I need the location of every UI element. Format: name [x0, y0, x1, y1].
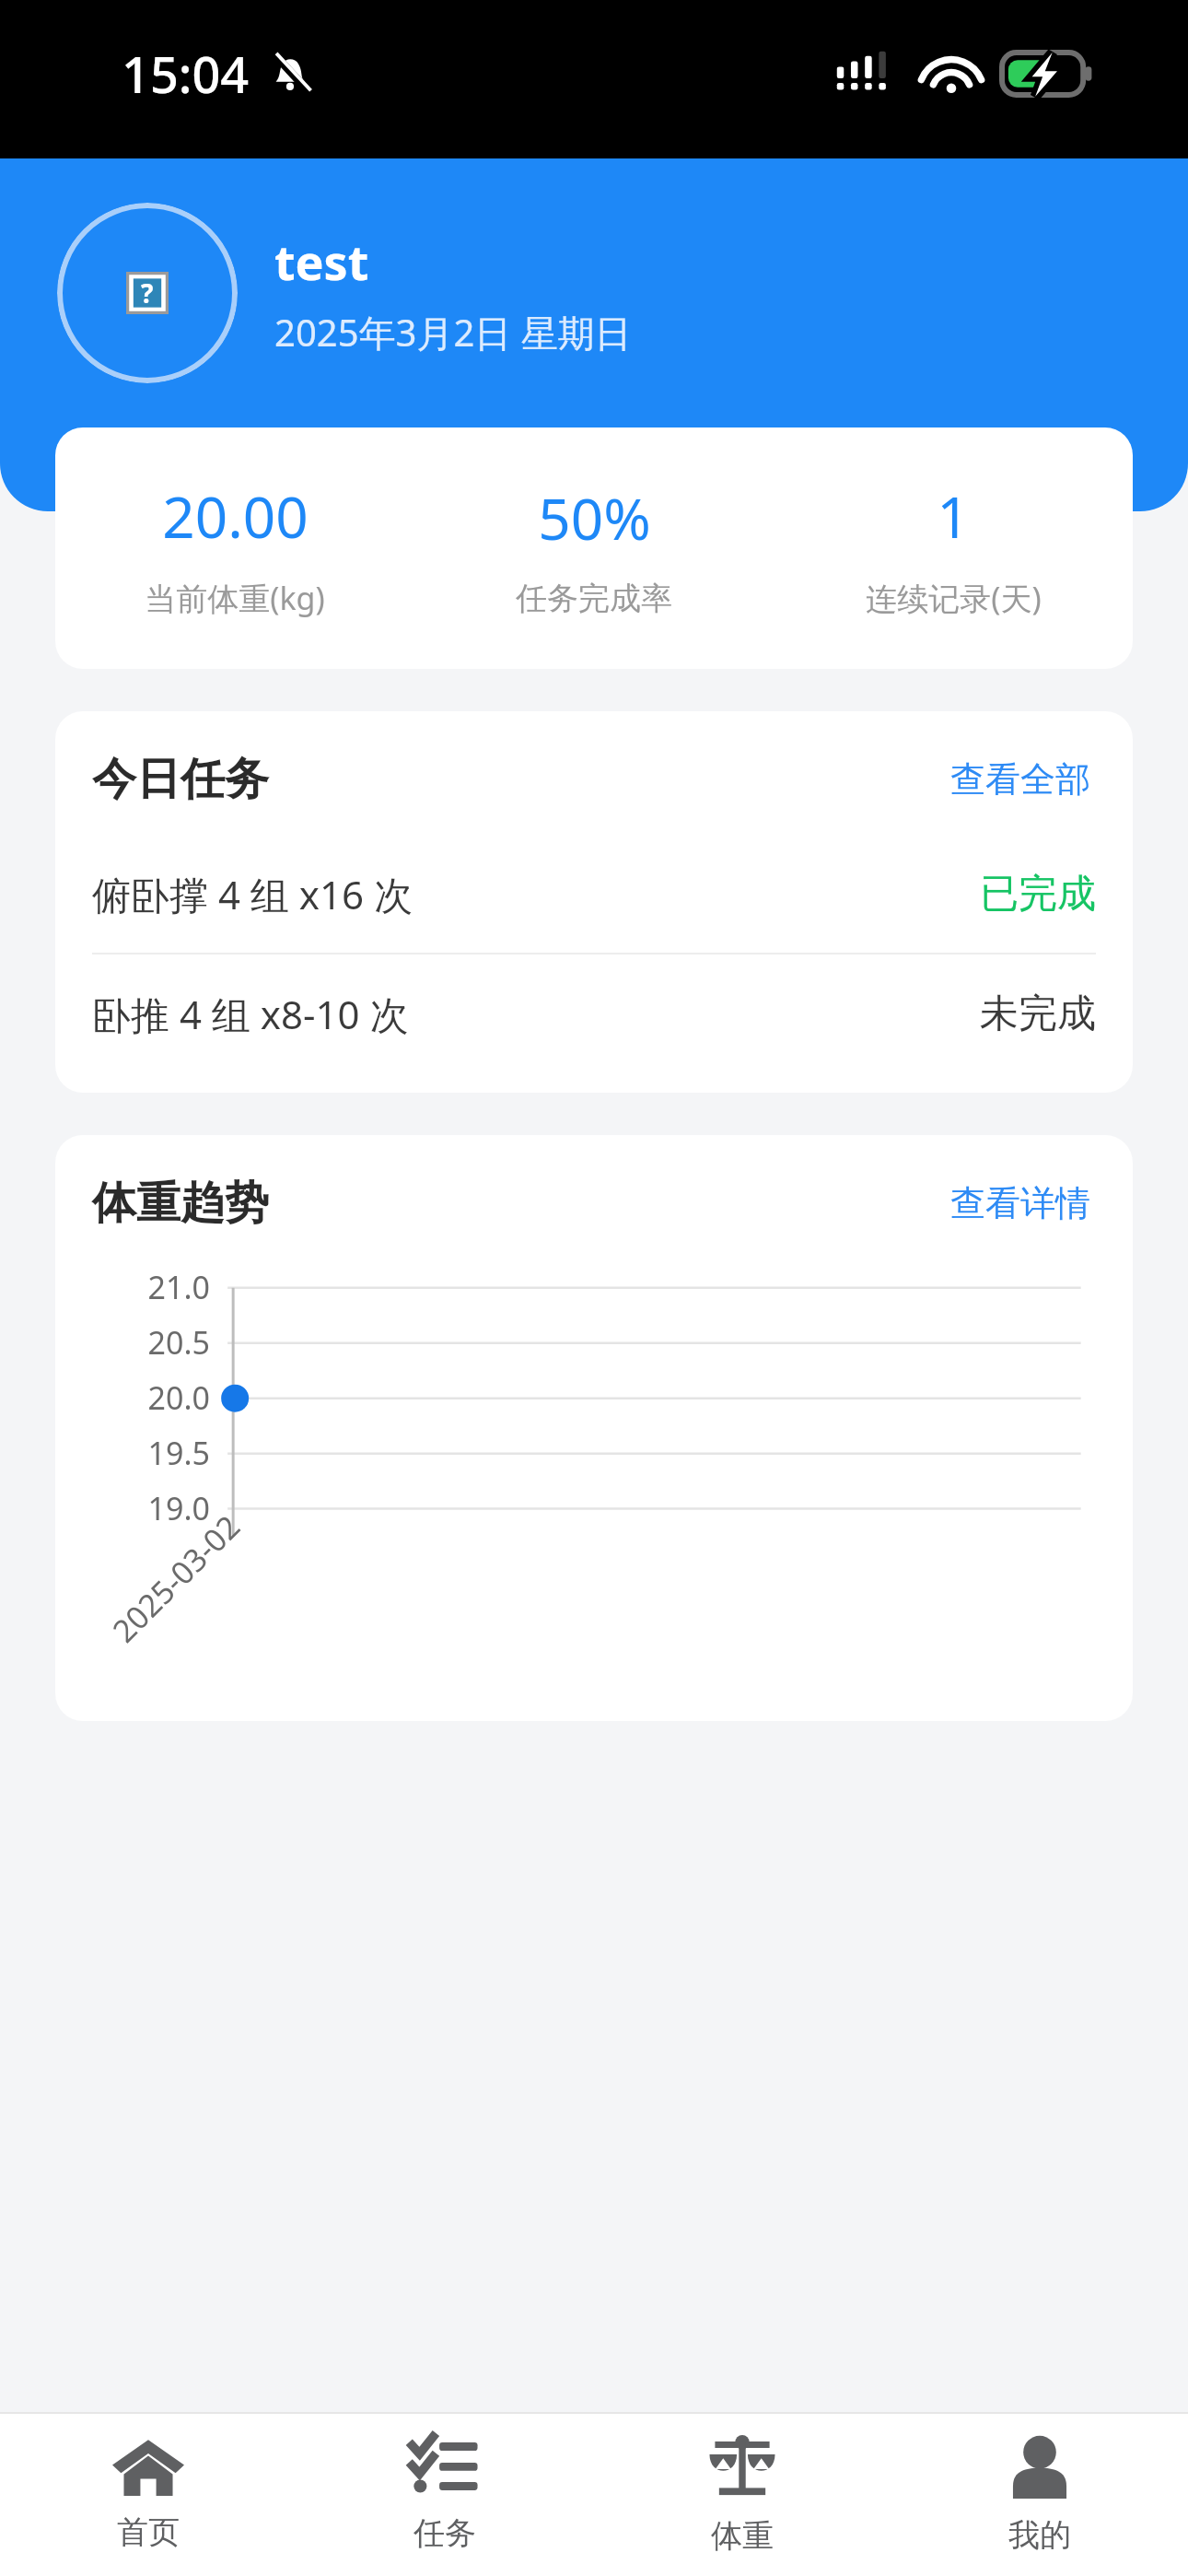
staticText: 20.00 — [162, 477, 309, 555]
staticText: 连续记录(天) — [866, 577, 1042, 619]
staticText: 20.0 — [111, 1376, 210, 1419]
button[interactable]: 20.00 — [55, 477, 414, 619]
staticText: 已完成 — [980, 870, 1096, 919]
button[interactable]: 查看详情 — [945, 1176, 1096, 1231]
staticText: 2025年3月2日 星期日 — [274, 307, 632, 357]
staticText: 50% — [538, 479, 651, 556]
button[interactable]: 1 — [774, 477, 1133, 619]
staticText: 15:04 — [122, 40, 250, 108]
staticText: 我的 — [1008, 2515, 1071, 2555]
staticText: 19.0 — [111, 1487, 210, 1529]
staticText: 体重趋势 — [92, 1176, 945, 1231]
staticText: 任务 — [413, 2513, 476, 2553]
button[interactable]: 首页 — [0, 2414, 297, 2576]
staticText: 首页 — [117, 2512, 180, 2552]
staticText: 当前体重(kg) — [145, 577, 325, 619]
staticText: 未完成 — [980, 989, 1096, 1038]
button[interactable]: 查看全部 — [945, 752, 1096, 807]
button[interactable]: 任务 — [297, 2414, 593, 2576]
staticText: 查看全部 — [950, 757, 1090, 802]
button[interactable]: 体重 — [593, 2414, 891, 2576]
staticText: 体重 — [711, 2516, 774, 2556]
staticText: 19.5 — [111, 1432, 210, 1474]
staticText: 今日任务 — [92, 752, 945, 807]
staticText: ? — [141, 275, 154, 310]
button[interactable]: 我的 — [891, 2414, 1188, 2576]
staticText: 卧推 4 组 x8-10 次 — [92, 988, 980, 1040]
staticText: 查看详情 — [950, 1181, 1090, 1225]
button[interactable]: 50% — [414, 479, 774, 618]
staticText: 任务完成率 — [516, 579, 672, 618]
staticText: 1 — [937, 477, 970, 555]
button[interactable]: 俯卧撑 4 组 x16 次 — [92, 835, 1096, 953]
staticText: test — [274, 228, 369, 294]
staticText: 俯卧撑 4 组 x16 次 — [92, 868, 980, 920]
staticText: 21.0 — [111, 1266, 210, 1308]
button[interactable]: 卧推 4 组 x8-10 次 — [92, 954, 1096, 1072]
staticText: 2025-03-02 — [103, 1505, 249, 1651]
button[interactable]: Profile avatar — [57, 203, 238, 383]
staticText: 20.5 — [111, 1321, 210, 1364]
